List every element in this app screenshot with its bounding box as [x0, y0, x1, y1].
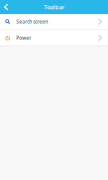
- button[interactable]: Power: [0, 30, 108, 46]
- staticText: Search screen: [16, 19, 48, 25]
- button[interactable]: Search screen: [0, 14, 108, 29]
- staticText: Power: [16, 35, 31, 41]
- staticText: Toolbar: [44, 3, 64, 11]
- button[interactable]: Back: [0, 0, 12, 14]
